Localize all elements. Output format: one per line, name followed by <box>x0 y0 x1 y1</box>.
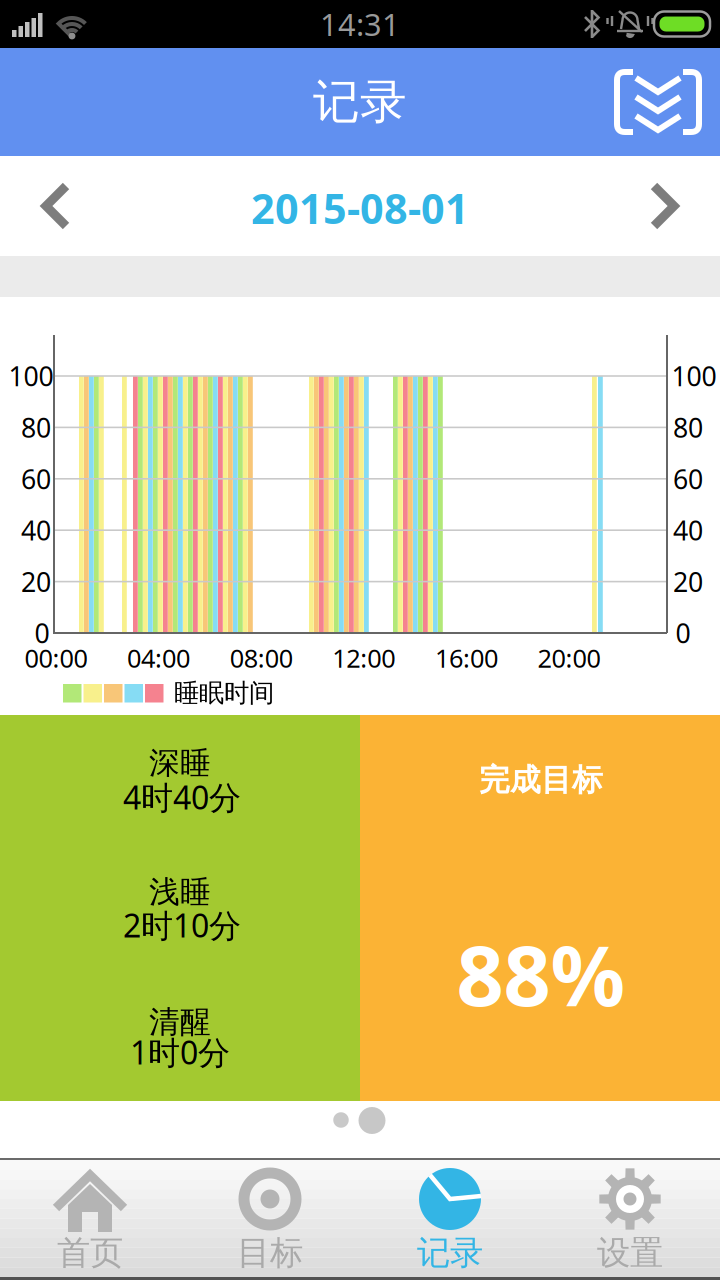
button[interactable]: Export records <box>603 57 713 147</box>
staticText: 深睡 <box>149 744 211 782</box>
button[interactable]: 记录 <box>360 1160 540 1277</box>
staticText: 80 <box>673 410 703 445</box>
staticText: 100 <box>671 358 716 394</box>
staticText: 2时10分 <box>123 904 241 946</box>
staticText: 2015-08-01 <box>251 181 469 235</box>
button[interactable]: 目标 <box>180 1160 360 1277</box>
staticText: 80 <box>21 410 51 445</box>
staticText: 0 <box>675 615 690 651</box>
staticText: 40 <box>21 512 51 548</box>
staticText: 0 <box>34 615 49 651</box>
staticText: 60 <box>21 461 51 496</box>
staticText: 08:00 <box>230 641 293 675</box>
staticText: 20 <box>21 564 51 599</box>
staticText: 40 <box>673 512 703 548</box>
staticText: 4时40分 <box>123 776 241 818</box>
button[interactable]: Next day <box>610 168 720 244</box>
button[interactable]: Previous day <box>0 168 110 244</box>
staticText: 设置 <box>597 1232 663 1273</box>
staticText: 1时0分 <box>130 1031 230 1073</box>
staticText: 04:00 <box>127 641 190 675</box>
staticText: 首页 <box>57 1232 123 1273</box>
staticText: 00:00 <box>24 641 87 675</box>
staticText: 清醒 <box>149 1003 211 1041</box>
staticText: 88% <box>456 919 625 1029</box>
button[interactable]: 首页 <box>0 1160 180 1277</box>
button[interactable]: 设置 <box>540 1160 720 1277</box>
staticText: 100 <box>8 358 53 394</box>
staticText: 16:00 <box>435 641 498 675</box>
staticText: 14:31 <box>320 4 400 44</box>
staticText: 睡眠时间 <box>174 677 274 708</box>
staticText: 20:00 <box>537 641 600 675</box>
staticText: 12:00 <box>332 641 395 675</box>
staticText: 60 <box>673 461 703 496</box>
staticText: 浅睡 <box>149 873 211 911</box>
staticText: 目标 <box>237 1232 303 1273</box>
staticText: 记录 <box>417 1232 483 1273</box>
staticText: 完成目标 <box>479 761 603 799</box>
staticText: 记录 <box>313 73 407 131</box>
staticText: 20 <box>673 564 703 599</box>
